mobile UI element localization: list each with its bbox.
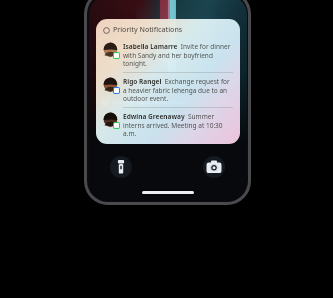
button[interactable]: Priority Notifications bbox=[96, 19, 240, 144]
button[interactable]: Flashlight bbox=[110, 156, 132, 178]
staticText: Rigo Rangel Exchange request for a heavi… bbox=[123, 77, 233, 103]
staticText: Edwina Greenaway Summer interns arrived.… bbox=[123, 112, 233, 138]
staticText: Priority Notifications bbox=[113, 25, 183, 35]
staticText: Lia Longo Savita booked house… bbox=[112, 99, 218, 106]
button[interactable]: Rigo Rangel Exchange request for a heavi… bbox=[103, 77, 233, 103]
button[interactable]: Camera bbox=[203, 156, 225, 178]
staticText: Isabella Lamarre Invite for dinner with … bbox=[123, 42, 233, 68]
button[interactable]: Isabella Lamarre Invite for dinner with … bbox=[103, 42, 233, 68]
button[interactable]: Edwina Greenaway Summer interns arrived.… bbox=[103, 112, 233, 138]
button[interactable]: Lia Longo Savita booked house… bbox=[97, 96, 239, 108]
